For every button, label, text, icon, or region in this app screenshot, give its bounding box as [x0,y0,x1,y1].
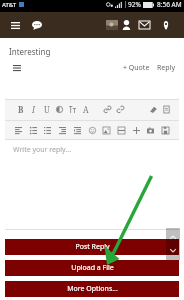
button[interactable]: Post Reply [5,239,179,255]
button[interactable]: Text colour [53,100,66,118]
button[interactable]: Insert link [101,100,114,118]
staticText: + Quote [123,63,150,73]
button[interactable]: Numbered list [41,121,54,139]
button[interactable]: I [27,100,40,118]
button[interactable]: Align left [12,121,25,139]
staticText: AT&T [2,1,17,9]
button[interactable]: More Options... [5,281,179,297]
button[interactable]: Post options [13,62,25,74]
staticText: Upload a File [71,263,114,273]
staticText: I [32,104,35,115]
button[interactable]: Source code [160,100,173,118]
button[interactable]: Clear formatting [147,100,160,118]
button[interactable]: Reply [155,63,177,73]
button[interactable]: More [130,121,143,139]
button[interactable]: Insert table [115,121,128,139]
button[interactable]: Font size [66,100,79,118]
button[interactable]: + Quote [121,63,152,73]
button[interactable]: Upload a File [5,260,179,276]
button[interactable]: Account photo [105,14,119,36]
staticText: Interesting [9,46,51,57]
staticText: Write your reply... [13,145,72,155]
button[interactable]: Scroll [166,228,180,260]
staticText: Reply [157,63,175,73]
staticText: 8:56 AM [157,0,182,9]
staticText: 92% [128,0,141,9]
button[interactable]: U [40,100,53,118]
button[interactable]: Camera [144,121,157,139]
button[interactable]: Emoji [86,121,99,139]
button[interactable]: Bullet list [27,121,40,139]
button[interactable]: Inbox [137,14,151,36]
button[interactable]: A [79,100,92,118]
staticText: U [44,104,50,115]
button[interactable]: B [14,100,27,118]
button[interactable]: Outdent [71,121,84,139]
button[interactable]: Location [159,14,173,36]
staticText: A [83,104,89,115]
staticText: B [18,104,24,115]
button[interactable]: Profile [119,14,133,36]
button[interactable]: Indent [56,121,69,139]
staticText: Post Reply [75,242,110,252]
button[interactable]: Messages [28,16,46,34]
button[interactable]: Navigation menu [6,16,24,34]
button[interactable]: Insert image [100,121,113,139]
staticText: More Options... [67,284,118,294]
button[interactable]: Save draft [159,121,172,139]
button[interactable]: Remove link [114,100,127,118]
